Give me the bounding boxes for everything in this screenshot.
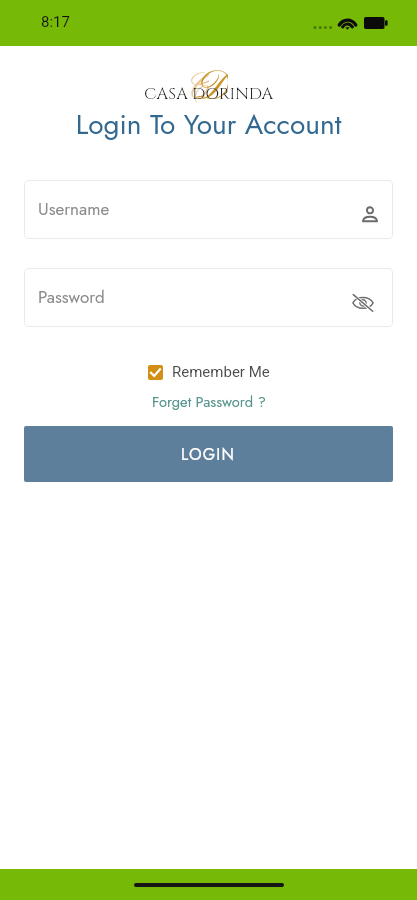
button[interactable]: Forget Password ? <box>150 391 268 412</box>
other: User <box>362 206 378 222</box>
staticText: CASA DORINDA <box>144 83 274 105</box>
other: Show password <box>352 293 374 312</box>
button[interactable]: Username <box>24 180 393 239</box>
button[interactable]: Remember Me <box>146 363 272 381</box>
staticText: Login To Your Account <box>0 104 417 144</box>
staticText: 8:17 <box>41 13 70 31</box>
staticText: Remember Me <box>172 363 270 381</box>
staticText: LOGIN <box>181 443 236 466</box>
staticText: C <box>186 67 209 108</box>
button[interactable]: LOGIN <box>24 426 393 482</box>
staticText: D <box>196 64 228 105</box>
button[interactable]: Password <box>24 268 393 327</box>
staticText: Password <box>38 285 105 310</box>
staticText: Username <box>38 197 110 222</box>
